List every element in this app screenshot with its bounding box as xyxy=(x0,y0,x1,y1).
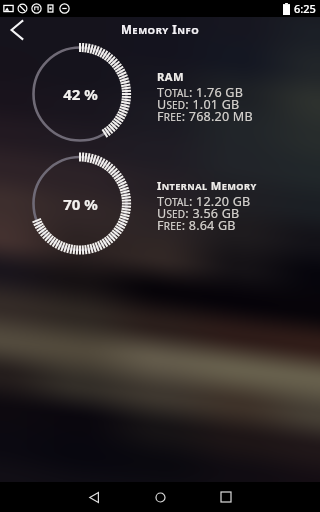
staticText: TOTAL: 12.20 GB USED: 3.56 GB FREE: 8.64… xyxy=(157,193,251,234)
staticText: INTERNAL MEMORY xyxy=(157,178,257,193)
staticText: 42 % xyxy=(63,84,98,104)
button[interactable]: Home xyxy=(127,482,193,512)
staticText: MEMORY INFO xyxy=(121,22,200,38)
staticText: RAM xyxy=(157,69,184,84)
button[interactable]: Back xyxy=(61,482,127,512)
button[interactable]: Recent apps xyxy=(193,482,259,512)
button[interactable]: Back xyxy=(2,17,30,42)
staticText: 70 % xyxy=(63,194,98,214)
staticText: 6:25 xyxy=(294,1,316,16)
staticText: TOTAL: 1.76 GB USED: 1.01 GB FREE: 768.2… xyxy=(157,84,253,125)
